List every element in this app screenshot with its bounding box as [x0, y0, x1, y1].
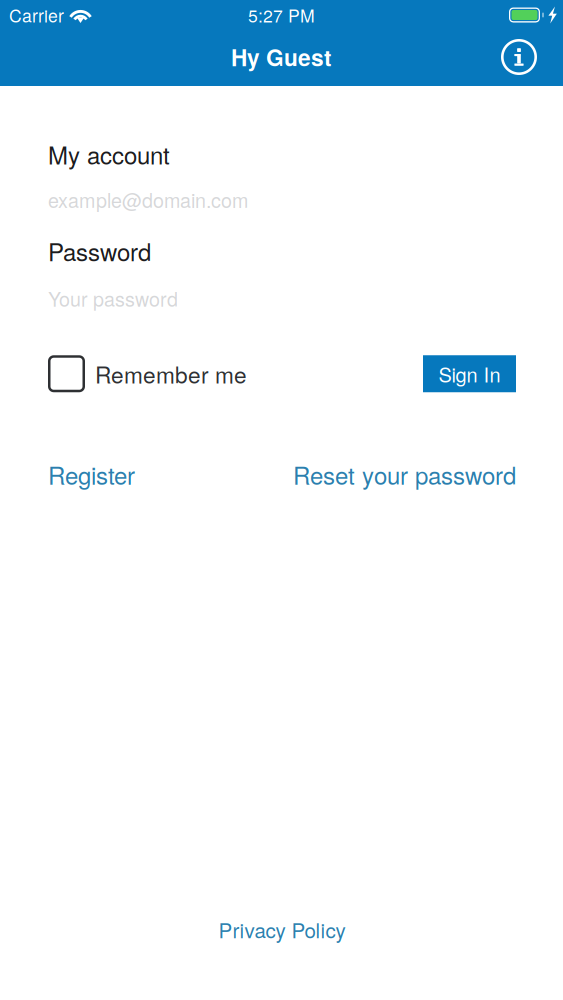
staticText: My account [48, 137, 170, 171]
button[interactable]: Privacy Policy [218, 915, 345, 944]
button[interactable]: example@domain.com [48, 185, 248, 214]
staticText: Your password [48, 284, 178, 312]
button[interactable]: Reset your password [293, 457, 516, 492]
button[interactable]: Information [499, 37, 539, 77]
button[interactable]: Register [48, 457, 135, 492]
staticText: Privacy Policy [218, 915, 345, 944]
staticText: Hy Guest [231, 41, 332, 73]
staticText: Password [48, 234, 151, 268]
staticText: Sign In [438, 359, 500, 388]
button[interactable]: Your password [48, 284, 178, 312]
staticText: Reset your password [293, 457, 516, 492]
staticText: example@domain.com [48, 185, 248, 214]
staticText: 5:27 PM [248, 2, 315, 28]
staticText: Carrier [9, 2, 64, 28]
button[interactable]: Sign In [423, 355, 516, 392]
staticText: Remember me [95, 357, 247, 390]
button[interactable]: Remember me [48, 355, 247, 392]
staticText: Register [48, 457, 135, 492]
